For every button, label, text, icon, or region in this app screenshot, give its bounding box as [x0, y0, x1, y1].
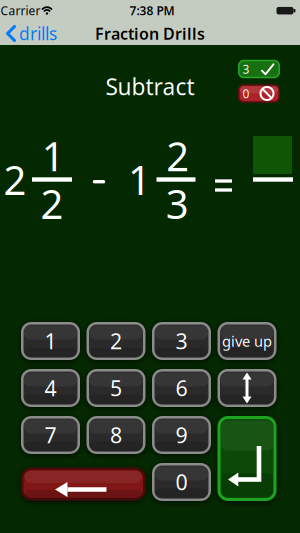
button[interactable]: 3 [238, 60, 280, 78]
staticText: 8 [110, 421, 122, 449]
staticText: drills [19, 22, 57, 45]
staticText: 2 [110, 327, 122, 355]
button[interactable]: 2 [86, 322, 145, 360]
staticText: 5 [110, 374, 122, 402]
staticText: 1 [128, 153, 151, 206]
button[interactable]: drills [6, 22, 57, 45]
button[interactable]: 5 [86, 369, 145, 407]
staticText: 0 [175, 468, 187, 496]
button[interactable]: 0 [238, 84, 280, 103]
button[interactable]: 6 [152, 369, 211, 407]
staticText: 2 [166, 129, 189, 182]
button[interactable]: 1 [21, 322, 80, 360]
staticText: 2 [40, 177, 63, 230]
staticText: Subtract [105, 71, 194, 101]
staticText: 4 [44, 374, 56, 402]
staticText: 1 [42, 129, 65, 182]
staticText: 7 [44, 421, 56, 449]
button[interactable]: 4 [21, 369, 80, 407]
staticText: 3 [242, 61, 249, 77]
staticText: 7:38 PM [129, 2, 174, 18]
staticText: 6 [175, 374, 187, 402]
button[interactable]: 9 [152, 416, 211, 454]
button[interactable]: 3 [152, 322, 211, 360]
staticText: give up [222, 331, 272, 351]
button[interactable]: give up [217, 322, 276, 360]
button[interactable]: 8 [86, 416, 145, 454]
staticText: Fraction Drills [95, 23, 205, 44]
staticText: 3 [175, 327, 187, 355]
button[interactable] [217, 369, 276, 407]
button[interactable] [217, 416, 276, 501]
staticText: 3 [166, 177, 189, 230]
staticText: 2 [3, 153, 26, 206]
button[interactable] [21, 467, 145, 500]
button[interactable]: 0 [152, 463, 211, 501]
staticText: Carrier [0, 2, 40, 18]
staticText: 0 [242, 85, 249, 101]
staticText: 1 [44, 327, 56, 355]
button[interactable]: 7 [21, 416, 80, 454]
staticText: 9 [175, 421, 187, 449]
